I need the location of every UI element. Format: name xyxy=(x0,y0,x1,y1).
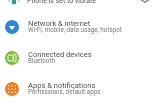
staticText: Apps & notifications xyxy=(28,81,96,90)
button[interactable]: Phone is set to vibrate xyxy=(0,0,158,14)
staticText: Phone is set to vibrate xyxy=(27,0,96,5)
button[interactable]: Network & internet xyxy=(0,11,158,42)
staticText: Permissions, default apps xyxy=(28,88,101,95)
button[interactable]: Expand suggestion xyxy=(139,0,151,7)
button[interactable]: Apps & notifications xyxy=(0,73,158,104)
staticText: Connected devices xyxy=(28,50,92,59)
button[interactable]: Connected devices xyxy=(0,42,158,73)
staticText: Network & internet xyxy=(28,19,91,28)
staticText: Wi-Fi, mobile, data usage, hotspot xyxy=(28,26,122,33)
staticText: Bluetooth xyxy=(28,57,55,64)
